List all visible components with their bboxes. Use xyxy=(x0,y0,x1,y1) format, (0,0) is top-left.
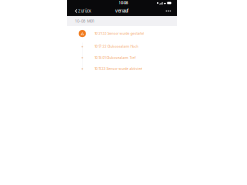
staticText: 10-08 Mon xyxy=(75,19,94,23)
staticText: 10:17:22 Glukosealarm Hoch xyxy=(94,45,138,49)
staticText: 10:15:01 Glukosealarm Tief xyxy=(94,56,135,60)
staticText: Verlauf xyxy=(115,9,129,13)
staticText: Zurück xyxy=(78,9,91,13)
staticText: 10:21:33 Sensor wurde gestartet xyxy=(94,32,144,35)
button[interactable]: 10:11:23 Sensor wurde aktiviert xyxy=(67,63,177,74)
staticText: 10:11:23 Sensor wurde aktiviert xyxy=(94,67,142,71)
button[interactable]: More options xyxy=(162,6,177,16)
button[interactable]: 10:15:01 Glukosealarm Tief xyxy=(67,52,177,63)
button[interactable]: 10:17:22 Glukosealarm Hoch xyxy=(67,41,177,52)
staticText: 10:08 xyxy=(119,1,128,5)
button[interactable]: Zurück xyxy=(67,6,93,16)
button[interactable]: 10:21:33 Sensor wurde gestartet xyxy=(67,26,177,41)
